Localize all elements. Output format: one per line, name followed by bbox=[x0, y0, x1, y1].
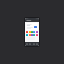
button[interactable]: App icon bbox=[31, 34, 33, 36]
button[interactable]: Profile bbox=[36, 43, 38, 45]
button[interactable]: Library bbox=[33, 43, 35, 45]
button[interactable]: Home bbox=[26, 43, 28, 45]
button[interactable]: App icon bbox=[36, 31, 38, 33]
button[interactable]: App icon bbox=[29, 31, 31, 33]
button[interactable]: Primary action bbox=[34, 26, 37, 28]
button[interactable]: Primary action bbox=[26, 23, 38, 30]
button[interactable]: Search bbox=[29, 43, 31, 45]
button[interactable]: App icon bbox=[36, 34, 38, 36]
button[interactable]: App icon bbox=[33, 31, 35, 33]
button[interactable]: App icon bbox=[26, 34, 28, 36]
button[interactable]: Top app bar bbox=[25, 18, 39, 22]
button[interactable]: App icon bbox=[29, 34, 31, 36]
button[interactable]: App icon bbox=[33, 34, 35, 36]
button[interactable]: App icon bbox=[26, 31, 28, 33]
button[interactable]: App icon bbox=[31, 31, 33, 33]
